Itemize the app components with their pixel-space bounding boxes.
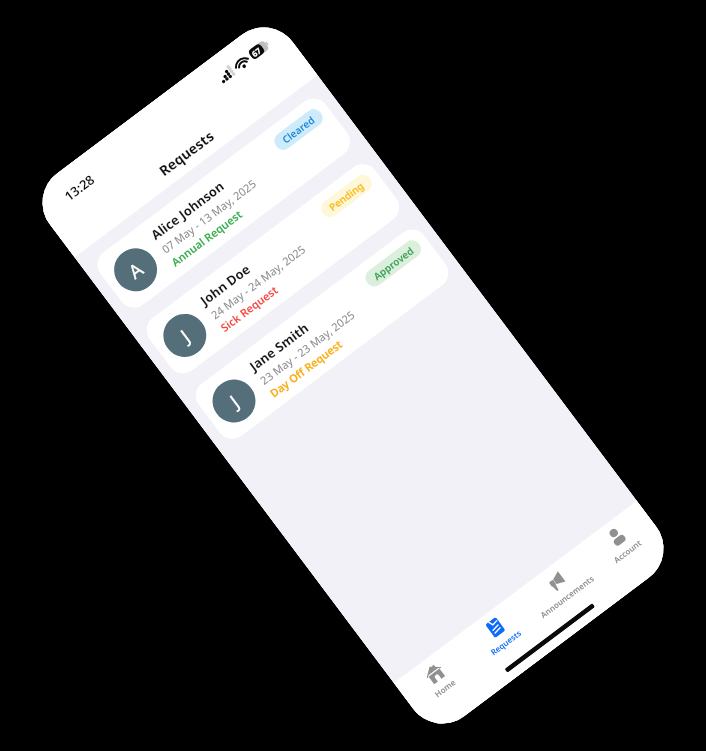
staticText: Requests: [488, 627, 523, 657]
button[interactable]: Announcements: [515, 546, 604, 629]
staticText: Day Off Request: [266, 336, 345, 400]
button[interactable]: Account: [576, 501, 665, 584]
button[interactable]: J: [140, 158, 405, 380]
button[interactable]: Requests: [454, 592, 543, 675]
staticText: Alice Johnson: [147, 176, 228, 244]
staticText: Announcements: [537, 572, 596, 620]
staticText: Account: [611, 537, 643, 565]
button[interactable]: J: [189, 223, 455, 445]
staticText: Sick Request: [217, 282, 281, 335]
staticText: Annual Request: [168, 206, 245, 269]
button[interactable]: A: [91, 92, 356, 314]
staticText: 23 May - 23 May, 2025: [257, 307, 358, 388]
staticText: 07 May - 13 May, 2025: [158, 175, 259, 256]
button[interactable]: Home: [394, 637, 483, 721]
staticText: J: [175, 323, 196, 348]
staticText: A: [123, 256, 149, 284]
staticText: Pending: [326, 178, 367, 214]
staticText: J: [224, 389, 245, 413]
staticText: 24 May - 24 May, 2025: [208, 241, 309, 322]
staticText: Home: [432, 676, 458, 699]
staticText: 13:28: [60, 170, 98, 205]
staticText: Approved: [370, 244, 416, 283]
staticText: 67: [249, 44, 264, 59]
staticText: John Doe: [196, 259, 254, 309]
staticText: Jane Smith: [245, 318, 312, 375]
staticText: Cleared: [279, 112, 318, 146]
staticText: Requests: [155, 126, 217, 180]
